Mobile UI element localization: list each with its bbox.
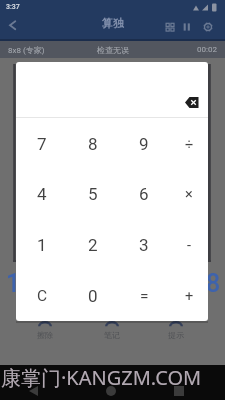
staticText: 2	[88, 235, 98, 255]
button[interactable]	[4, 17, 20, 33]
button[interactable]: 1	[21, 224, 63, 266]
button[interactable]: 提示	[160, 320, 192, 342]
button[interactable]: 0	[72, 275, 114, 317]
staticText: 9	[139, 134, 149, 154]
button[interactable]: 4	[21, 173, 63, 215]
staticText: 1	[6, 269, 21, 298]
staticText: 00:02	[197, 45, 217, 54]
staticText: C	[37, 287, 48, 305]
staticText: 0	[88, 286, 98, 306]
button[interactable]: 擦除	[29, 320, 61, 342]
button[interactable]: =	[123, 275, 165, 317]
button[interactable]: 3	[123, 224, 165, 266]
staticText: ÷	[185, 136, 194, 153]
staticText: ×	[185, 186, 193, 203]
staticText: =	[140, 287, 149, 305]
staticText: 3:37	[6, 3, 20, 11]
button[interactable]: ÷	[168, 123, 208, 165]
button[interactable]: C	[21, 275, 63, 317]
staticText: 8x8 (专家)	[8, 45, 45, 55]
staticText: 1	[37, 235, 47, 255]
staticText: 6	[139, 184, 149, 204]
staticText: -	[187, 237, 192, 254]
button[interactable]	[179, 19, 195, 35]
staticText: 8	[88, 134, 98, 154]
button[interactable]	[162, 19, 178, 35]
button[interactable]: 7	[21, 123, 63, 165]
button[interactable]: 6	[123, 173, 165, 215]
button[interactable]	[176, 87, 208, 117]
staticText: +	[185, 288, 194, 305]
staticText: 7	[37, 134, 47, 154]
staticText: 3	[139, 235, 149, 255]
button[interactable]: 5	[72, 173, 114, 215]
button[interactable]: 9	[123, 123, 165, 165]
button[interactable]: 笔记	[96, 320, 128, 342]
staticText: 8	[206, 269, 221, 298]
staticText: 算独	[102, 16, 124, 30]
button[interactable]: -	[168, 224, 208, 266]
staticText: 笔记	[104, 330, 120, 340]
staticText: 5	[88, 184, 98, 204]
staticText: 提示	[168, 330, 184, 340]
button[interactable]: +	[168, 275, 208, 317]
staticText: 康掌门·KANGZM.COM	[1, 364, 202, 391]
button[interactable]: ×	[168, 173, 208, 215]
button[interactable]	[200, 19, 216, 35]
staticText: 检查无误	[97, 45, 129, 55]
staticText: 擦除	[37, 330, 53, 340]
staticText: 4	[37, 184, 47, 204]
button[interactable]: 2	[72, 224, 114, 266]
button[interactable]: 8	[72, 123, 114, 165]
